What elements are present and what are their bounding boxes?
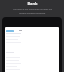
- staticText: Bank: [27, 1, 38, 6]
- button[interactable]: [6, 29, 59, 32]
- staticText: The topic of this article may not meet t…: [13, 8, 52, 14]
